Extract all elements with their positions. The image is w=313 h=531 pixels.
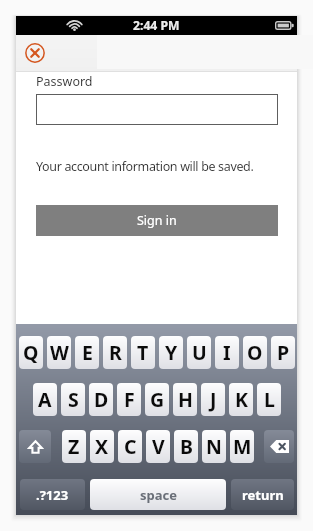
- button[interactable]: I: [215, 336, 239, 369]
- staticText: space: [140, 486, 177, 504]
- staticText: H: [178, 386, 193, 413]
- staticText: O: [247, 339, 263, 366]
- staticText: Q: [23, 339, 39, 366]
- staticText: W: [50, 339, 69, 366]
- staticText: Y: [165, 339, 178, 366]
- button[interactable]: space: [90, 479, 226, 510]
- button[interactable]: F: [117, 383, 141, 416]
- button[interactable]: A: [33, 383, 57, 416]
- staticText: A: [38, 386, 52, 413]
- staticText: F: [124, 386, 135, 413]
- button[interactable]: J: [201, 383, 225, 416]
- staticText: S: [68, 386, 79, 413]
- staticText: Password: [36, 73, 93, 90]
- button[interactable]: G: [145, 383, 169, 416]
- staticText: 2:44 PM: [133, 17, 180, 34]
- button[interactable]: Q: [19, 336, 43, 369]
- staticText: T: [137, 339, 149, 366]
- staticText: U: [192, 339, 207, 366]
- button[interactable]: Shift: [19, 430, 51, 463]
- staticText: M: [233, 433, 252, 460]
- button[interactable]: V: [146, 430, 170, 463]
- button[interactable]: R: [103, 336, 127, 369]
- button[interactable]: [36, 94, 278, 125]
- button[interactable]: Backspace: [264, 430, 294, 463]
- button[interactable]: E: [75, 336, 99, 369]
- button[interactable]: C: [118, 430, 142, 463]
- button[interactable]: Sign in: [36, 205, 278, 236]
- staticText: Z: [68, 433, 80, 460]
- button[interactable]: H: [173, 383, 197, 416]
- button[interactable]: D: [89, 383, 113, 416]
- staticText: J: [210, 386, 217, 413]
- staticText: K: [235, 386, 248, 413]
- staticText: D: [94, 386, 109, 413]
- button[interactable]: O: [243, 336, 267, 369]
- button[interactable]: P: [271, 336, 295, 369]
- button[interactable]: X: [90, 430, 114, 463]
- staticText: E: [82, 339, 93, 366]
- staticText: return: [242, 486, 284, 504]
- staticText: V: [152, 433, 165, 460]
- button[interactable]: B: [174, 430, 198, 463]
- button[interactable]: S: [61, 383, 85, 416]
- staticText: C: [124, 433, 137, 460]
- staticText: R: [109, 339, 122, 366]
- button[interactable]: .?123: [20, 479, 85, 510]
- button[interactable]: W: [47, 336, 71, 369]
- button[interactable]: return: [231, 479, 294, 510]
- staticText: N: [206, 433, 222, 460]
- staticText: B: [180, 433, 193, 460]
- button[interactable]: Close: [21, 39, 49, 67]
- staticText: Sign in: [137, 212, 177, 229]
- button[interactable]: T: [131, 336, 155, 369]
- staticText: .?123: [36, 486, 69, 504]
- button[interactable]: K: [229, 383, 253, 416]
- button[interactable]: M: [230, 430, 254, 463]
- button[interactable]: N: [202, 430, 226, 463]
- staticText: Your account information will be saved.: [36, 158, 254, 175]
- staticText: X: [95, 433, 109, 460]
- staticText: L: [264, 386, 275, 413]
- button[interactable]: Z: [62, 430, 86, 463]
- button[interactable]: L: [257, 383, 281, 416]
- button[interactable]: U: [187, 336, 211, 369]
- staticText: P: [277, 339, 290, 366]
- staticText: G: [150, 386, 165, 413]
- button[interactable]: Y: [159, 336, 183, 369]
- staticText: I: [223, 339, 231, 366]
